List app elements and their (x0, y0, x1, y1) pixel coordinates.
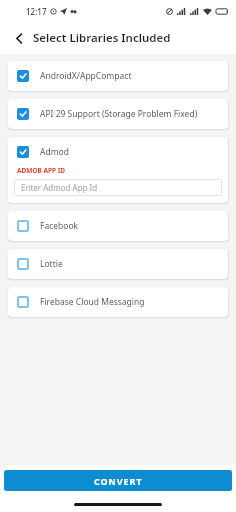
button[interactable]: Enter Admod App Id (14, 179, 222, 196)
button[interactable]: API 29 Support (Storage Problem Fixed) (8, 99, 228, 129)
staticText: Admod (40, 146, 69, 158)
staticText: Facebook (40, 220, 79, 232)
staticText: 12:17 (26, 6, 47, 17)
button[interactable]: Admod (8, 137, 228, 166)
staticText: API 29 Support (Storage Problem Fixed) (40, 108, 198, 120)
staticText: ADMOB APP ID (17, 166, 66, 175)
button[interactable]: Back (6, 25, 32, 51)
staticText: CONVERT (94, 475, 143, 487)
staticText: Select Libraries Included (33, 30, 171, 46)
staticText: Lottie (40, 258, 63, 270)
button[interactable]: CONVERT (4, 470, 232, 491)
button[interactable]: Firebase Cloud Messaging (8, 287, 228, 317)
staticText: Firebase Cloud Messaging (40, 296, 145, 308)
staticText: Enter Admod App Id (21, 182, 98, 193)
button[interactable]: Lottie (8, 249, 228, 279)
button[interactable]: Facebook (8, 211, 228, 241)
button[interactable]: AndroidX/AppCompact (8, 61, 228, 91)
staticText: AndroidX/AppCompact (40, 70, 132, 82)
